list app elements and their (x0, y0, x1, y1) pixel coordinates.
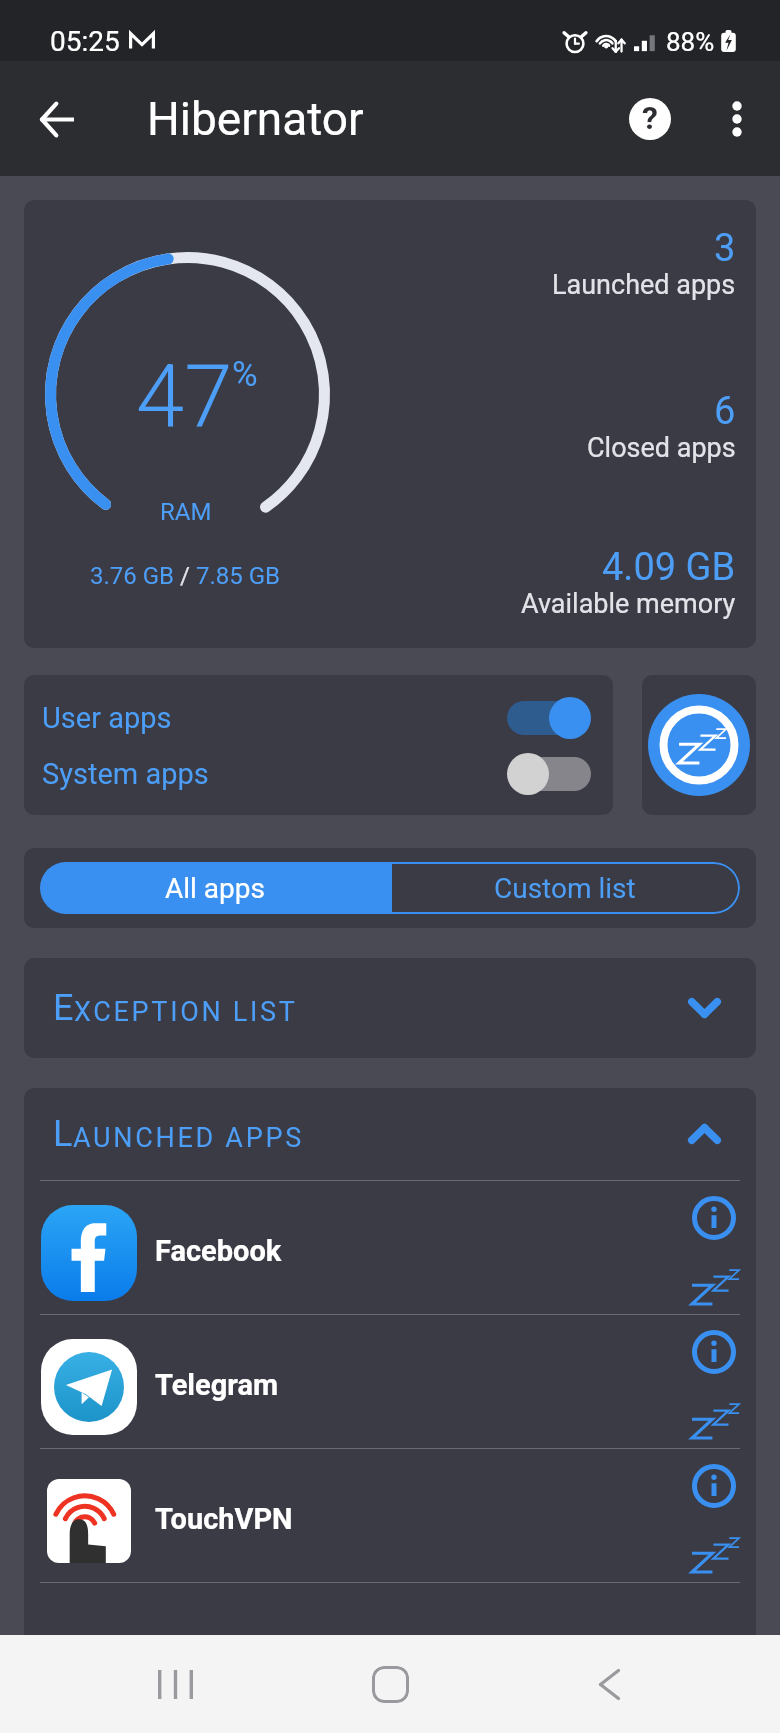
button[interactable]: Back (571, 1646, 647, 1722)
staticText: 7.85 GB (196, 562, 281, 590)
button[interactable]: Facebook (24, 1181, 756, 1314)
staticText: 4.09 GB (602, 545, 736, 590)
button[interactable]: App info (688, 1192, 740, 1244)
button[interactable]: Hibernate app (692, 1404, 732, 1438)
staticText: All apps (165, 872, 265, 905)
staticText: Launched apps (552, 269, 736, 301)
button[interactable]: Hibernate all (642, 675, 756, 815)
button[interactable]: E (24, 958, 756, 1058)
staticText: / (180, 562, 196, 590)
button[interactable]: Home (352, 1646, 428, 1722)
staticText: 88% (666, 27, 715, 57)
staticText: E (53, 987, 74, 1029)
staticText: XCEPTION LIST (74, 996, 298, 1028)
button[interactable]: L (24, 1088, 756, 1180)
button[interactable]: System apps (42, 749, 591, 799)
button[interactable]: Hibernate app (692, 1538, 732, 1572)
staticText: 6 (714, 389, 736, 434)
staticText: 3 (714, 226, 736, 271)
staticText: Hibernator (147, 92, 364, 146)
button[interactable]: User apps (42, 693, 591, 743)
button[interactable]: Back (23, 85, 91, 153)
button[interactable]: Hibernate app (692, 1270, 732, 1304)
button[interactable]: App info (688, 1460, 740, 1512)
staticText: Custom list (494, 872, 636, 905)
button[interactable]: All apps (40, 862, 390, 914)
button[interactable]: App info (688, 1326, 740, 1378)
staticText: User apps (42, 701, 172, 735)
staticText: Facebook (155, 1234, 282, 1268)
staticText: RAM (160, 498, 212, 526)
button[interactable]: Telegram (24, 1315, 756, 1448)
staticText: Available memory (521, 588, 736, 620)
button[interactable]: Help (616, 85, 684, 153)
button[interactable]: Recents (137, 1646, 213, 1722)
staticText: Closed apps (587, 432, 736, 464)
staticText: 3.76 GB (90, 562, 180, 590)
button[interactable]: More options (703, 85, 771, 153)
button[interactable]: Custom list (390, 862, 740, 914)
staticText: AUNCHED APPS (73, 1122, 304, 1154)
staticText: 05:25 (50, 25, 120, 58)
staticText: % (232, 354, 258, 395)
staticText: 47 (136, 346, 233, 448)
staticText: Telegram (155, 1368, 279, 1402)
button[interactable]: TouchVPN (24, 1449, 756, 1582)
staticText: L (53, 1113, 73, 1155)
staticText: TouchVPN (155, 1502, 293, 1536)
staticText: System apps (42, 757, 209, 791)
staticText: ? (642, 99, 658, 137)
